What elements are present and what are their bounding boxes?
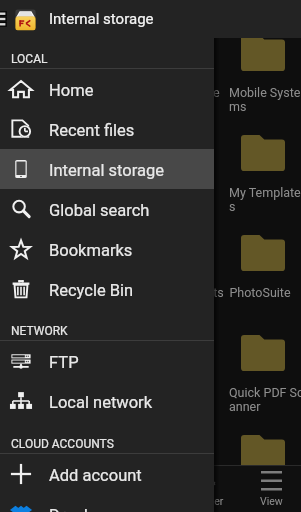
staticText: Movies — [149, 185, 190, 200]
staticText: Internal storage — [49, 10, 154, 28]
button[interactable] — [241, 335, 285, 371]
staticText: Documents — [160, 285, 224, 300]
button[interactable]: Global search — [0, 189, 214, 229]
staticText: CLOUD ACCOUNTS — [11, 437, 114, 451]
button[interactable]: Open navigation drawer — [0, 0, 13, 38]
button[interactable]: View — [240, 465, 301, 512]
staticText: Local network — [49, 393, 153, 412]
staticText: Google Drive — [149, 85, 220, 100]
staticText: My Template s — [229, 185, 301, 214]
button[interactable] — [241, 35, 285, 71]
staticText: LOCAL — [11, 52, 48, 66]
staticText: Recycle Bin — [49, 281, 134, 300]
staticText: Add account — [49, 466, 142, 485]
staticText: View — [260, 495, 283, 507]
staticText: Quick PDF Sc anner — [229, 385, 301, 414]
button[interactable]: Recycle Bin — [0, 269, 214, 309]
button[interactable]: Folder — [177, 465, 241, 512]
staticText: Folder — [194, 495, 224, 507]
staticText: Bookmarks — [49, 241, 133, 260]
button[interactable]: FTP — [0, 341, 214, 381]
button[interactable]: Recent files — [0, 109, 214, 149]
staticText: Downloads — [229, 485, 292, 500]
staticText: NETWORK — [11, 324, 68, 338]
button[interactable]: Add account — [0, 454, 214, 494]
button[interactable] — [241, 435, 285, 471]
button[interactable] — [241, 135, 285, 171]
staticText: FTP — [49, 353, 79, 372]
staticText: PhotoSuite — [229, 285, 291, 300]
staticText: Mobile Syste ms — [229, 85, 301, 114]
staticText: Global search — [49, 201, 150, 220]
button[interactable]: Dropbox — [0, 494, 214, 512]
staticText: Dropbox — [49, 506, 111, 512]
staticText: Home — [49, 81, 94, 100]
button[interactable] — [241, 235, 285, 271]
button[interactable]: Bookmarks — [0, 229, 214, 269]
staticText: Recent files — [49, 121, 135, 140]
staticText: Music — [149, 385, 183, 400]
staticText: Internal storage — [49, 161, 164, 180]
button[interactable]: Local network — [0, 381, 214, 421]
button[interactable]: Internal storage — [0, 149, 214, 189]
button[interactable]: Home — [0, 69, 214, 109]
